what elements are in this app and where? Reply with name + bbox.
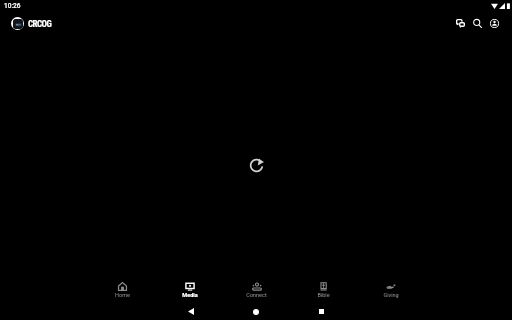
button[interactable]: Giving — [357, 273, 424, 303]
staticText: Giving — [383, 292, 399, 298]
button[interactable]: Back — [176, 303, 206, 320]
button[interactable]: Messages — [452, 15, 469, 31]
button[interactable]: Search — [469, 15, 486, 31]
button[interactable]: Bible — [290, 273, 357, 303]
staticText: Connect — [246, 292, 267, 298]
staticText: Media — [182, 292, 198, 298]
staticText: 10:26 — [4, 2, 21, 10]
button[interactable]: Home — [241, 303, 271, 320]
button[interactable]: Media — [156, 273, 223, 303]
button[interactable]: Home — [89, 273, 156, 303]
staticText: Home — [115, 292, 130, 298]
button[interactable]: Recent apps — [306, 303, 336, 320]
button[interactable]: Connect — [223, 273, 290, 303]
staticText: Bible — [317, 292, 330, 298]
button[interactable]: Account — [486, 15, 503, 31]
staticText: CRCOG — [28, 19, 52, 30]
